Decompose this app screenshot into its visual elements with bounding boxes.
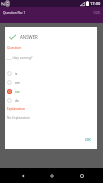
button[interactable]: OK [81, 134, 95, 145]
staticText: is [15, 72, 18, 76]
staticText: ANSWER [20, 34, 38, 40]
staticText: Question No: 1 [3, 11, 26, 15]
staticText: Explanation [7, 107, 26, 111]
staticText: OK [85, 137, 91, 142]
staticText: do [15, 99, 19, 103]
button[interactable]: is [5, 69, 97, 78]
button[interactable]: Recent apps [74, 168, 89, 183]
button[interactable]: Back [15, 168, 30, 183]
staticText: am [15, 81, 20, 85]
staticText: Question [7, 46, 21, 50]
button[interactable]: am [5, 78, 97, 87]
button[interactable]: are [5, 87, 97, 96]
button[interactable]: do [5, 96, 97, 105]
button[interactable]: Home [44, 168, 59, 183]
staticText: 1/20 [93, 11, 100, 15]
staticText: ____ they coming? [6, 56, 33, 60]
staticText: 17:00 [90, 1, 101, 6]
staticText: are [15, 90, 20, 94]
staticText: No Explanation [7, 116, 30, 120]
